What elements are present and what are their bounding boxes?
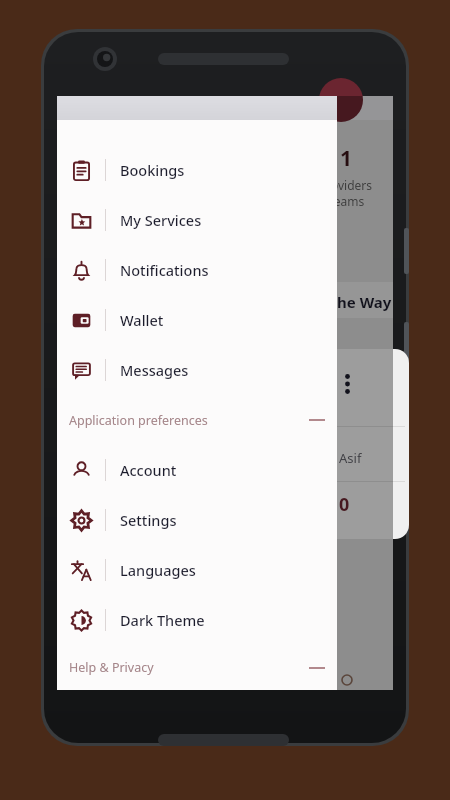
button[interactable]: Help & Privacy — [57, 645, 337, 690]
staticText: Settings — [120, 510, 177, 530]
staticText: Providers — [319, 177, 373, 193]
staticText: On the Way — [305, 292, 392, 312]
button[interactable]: Wallet — [57, 295, 337, 345]
button[interactable]: Languages — [57, 545, 337, 595]
staticText: Teams — [328, 193, 365, 209]
button[interactable]: My Services — [57, 195, 337, 245]
other: Wallet — [71, 310, 92, 331]
button[interactable]: Application preferences — [57, 395, 337, 445]
other: My Services — [71, 210, 92, 231]
button[interactable]: Notifications — [57, 245, 337, 295]
staticText: 1 — [340, 144, 353, 173]
staticText: Help & Privacy — [69, 659, 154, 676]
staticText: Notifications — [120, 260, 209, 280]
staticText: Dark Theme — [120, 610, 205, 630]
other: Account — [71, 460, 92, 481]
button[interactable]: Messages — [57, 345, 337, 395]
staticText: Languages — [120, 560, 196, 580]
other: Dark Theme — [71, 610, 92, 631]
button[interactable]: Bookings — [57, 145, 337, 195]
other: Settings — [71, 510, 92, 531]
staticText: 0 — [339, 492, 350, 517]
other: Messages — [71, 360, 92, 381]
button[interactable]: Account — [57, 445, 337, 495]
other: Notifications — [71, 260, 92, 281]
button[interactable]: Settings — [57, 495, 337, 545]
button[interactable]: Dark Theme — [57, 595, 337, 645]
staticText: Application preferences — [69, 412, 208, 429]
staticText: Bookings — [120, 160, 185, 180]
other: Languages — [71, 560, 92, 581]
staticText: My Services — [120, 210, 202, 230]
staticText: Asif — [339, 449, 362, 467]
staticText: Account — [120, 460, 177, 480]
staticText: Wallet — [120, 310, 164, 330]
other: Bookings — [71, 160, 92, 181]
staticText: Messages — [120, 360, 189, 380]
